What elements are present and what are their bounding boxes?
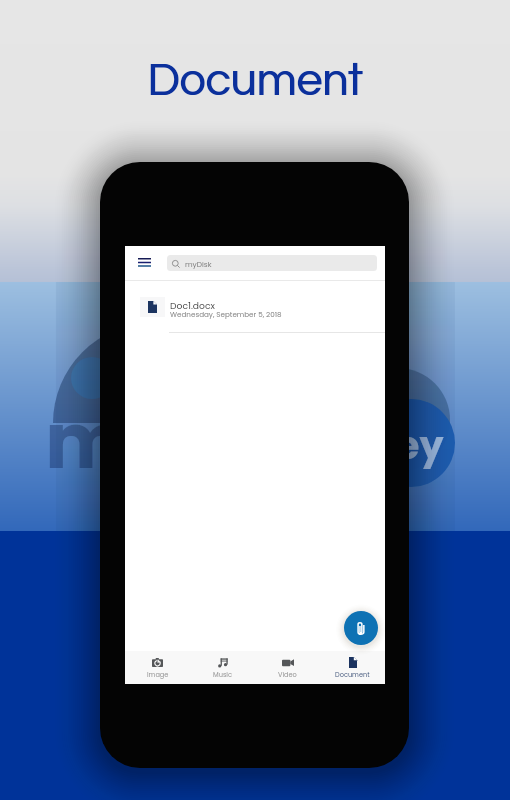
button[interactable]: Image — [125, 651, 190, 684]
button[interactable]: Document — [320, 651, 385, 684]
staticText: Music — [213, 670, 232, 679]
staticText: Doc1.docx — [170, 299, 215, 312]
staticText: Document — [147, 57, 363, 104]
staticText: Image — [147, 670, 169, 679]
staticText: Document — [335, 670, 370, 679]
button[interactable]: Music — [190, 651, 255, 684]
staticText: myDisk — [185, 259, 212, 269]
button[interactable]: Doc1.docx — [125, 281, 385, 332]
button[interactable]: Attach file — [344, 611, 378, 645]
staticText: ey — [396, 419, 444, 472]
staticText: Wednesday, September 5, 2018 — [170, 309, 282, 319]
staticText: Document — [148, 57, 364, 104]
button[interactable]: Open navigation menu — [133, 252, 152, 272]
staticText: m — [45, 387, 127, 495]
button[interactable]: Video — [255, 651, 320, 684]
button[interactable]: myDisk — [167, 255, 377, 271]
staticText: Video — [278, 670, 297, 679]
